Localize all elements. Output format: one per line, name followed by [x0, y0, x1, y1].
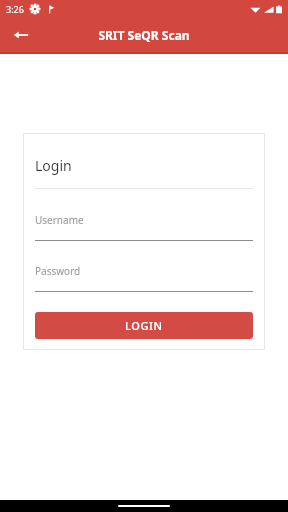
button[interactable]: LOGIN: [35, 312, 253, 339]
staticText: 3:26: [6, 3, 24, 15]
button[interactable]: Back: [8, 22, 34, 48]
button[interactable]: Password: [35, 264, 253, 292]
staticText: Username: [35, 213, 84, 227]
staticText: Password: [35, 264, 81, 278]
staticText: SRIT SeQR Scan: [98, 27, 190, 43]
button[interactable]: Username: [35, 213, 253, 241]
staticText: LOGIN: [125, 318, 163, 333]
staticText: Login: [35, 156, 72, 175]
